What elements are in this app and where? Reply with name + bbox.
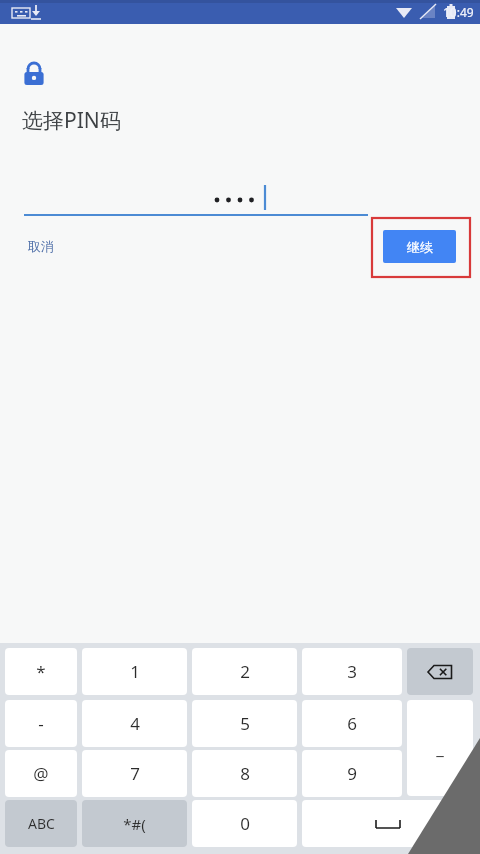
staticText: 3 — [347, 660, 357, 683]
staticText: 6 — [347, 712, 357, 735]
button[interactable]: 1 — [82, 648, 187, 695]
staticText: 10:49 — [443, 4, 474, 20]
staticText: * — [36, 660, 46, 683]
button[interactable]: ABC — [5, 800, 77, 847]
staticText: *#( — [123, 814, 146, 834]
staticText: 选择PIN码 — [22, 106, 121, 135]
button[interactable]: - — [5, 700, 77, 747]
button[interactable]: 7 — [82, 750, 187, 797]
button[interactable]: 3 — [302, 648, 402, 695]
button[interactable]: *#( — [82, 800, 187, 847]
button[interactable]: 5 — [192, 700, 297, 747]
staticText: 4 — [130, 712, 140, 735]
button[interactable]: 取消 — [22, 232, 60, 260]
button[interactable]: 9 — [302, 750, 402, 797]
button[interactable]: 继续 — [383, 230, 456, 263]
staticText: 8 — [240, 762, 250, 785]
staticText: 5 — [240, 712, 250, 735]
button[interactable]: 0 — [192, 800, 297, 847]
button[interactable]: @ — [5, 750, 77, 797]
button[interactable]: 4 — [82, 700, 187, 747]
staticText: 2 — [240, 660, 250, 683]
button[interactable]: 2 — [192, 648, 297, 695]
button[interactable]: 8 — [192, 750, 297, 797]
staticText: 9 — [347, 762, 357, 785]
button[interactable]: Space — [302, 800, 473, 847]
staticText: 继续 — [407, 239, 433, 255]
button[interactable]: 6 — [302, 700, 402, 747]
staticText: @ — [33, 762, 49, 785]
staticText: ABC — [28, 814, 55, 833]
button[interactable]: Backspace — [407, 648, 473, 695]
staticText: _ — [436, 737, 444, 760]
button[interactable]: * — [5, 648, 77, 695]
staticText: 0 — [240, 812, 250, 835]
staticText: 7 — [130, 762, 140, 785]
button[interactable]: _ — [407, 700, 473, 796]
staticText: - — [38, 712, 44, 735]
staticText: 取消 — [28, 238, 54, 254]
staticText: 1 — [130, 660, 140, 683]
